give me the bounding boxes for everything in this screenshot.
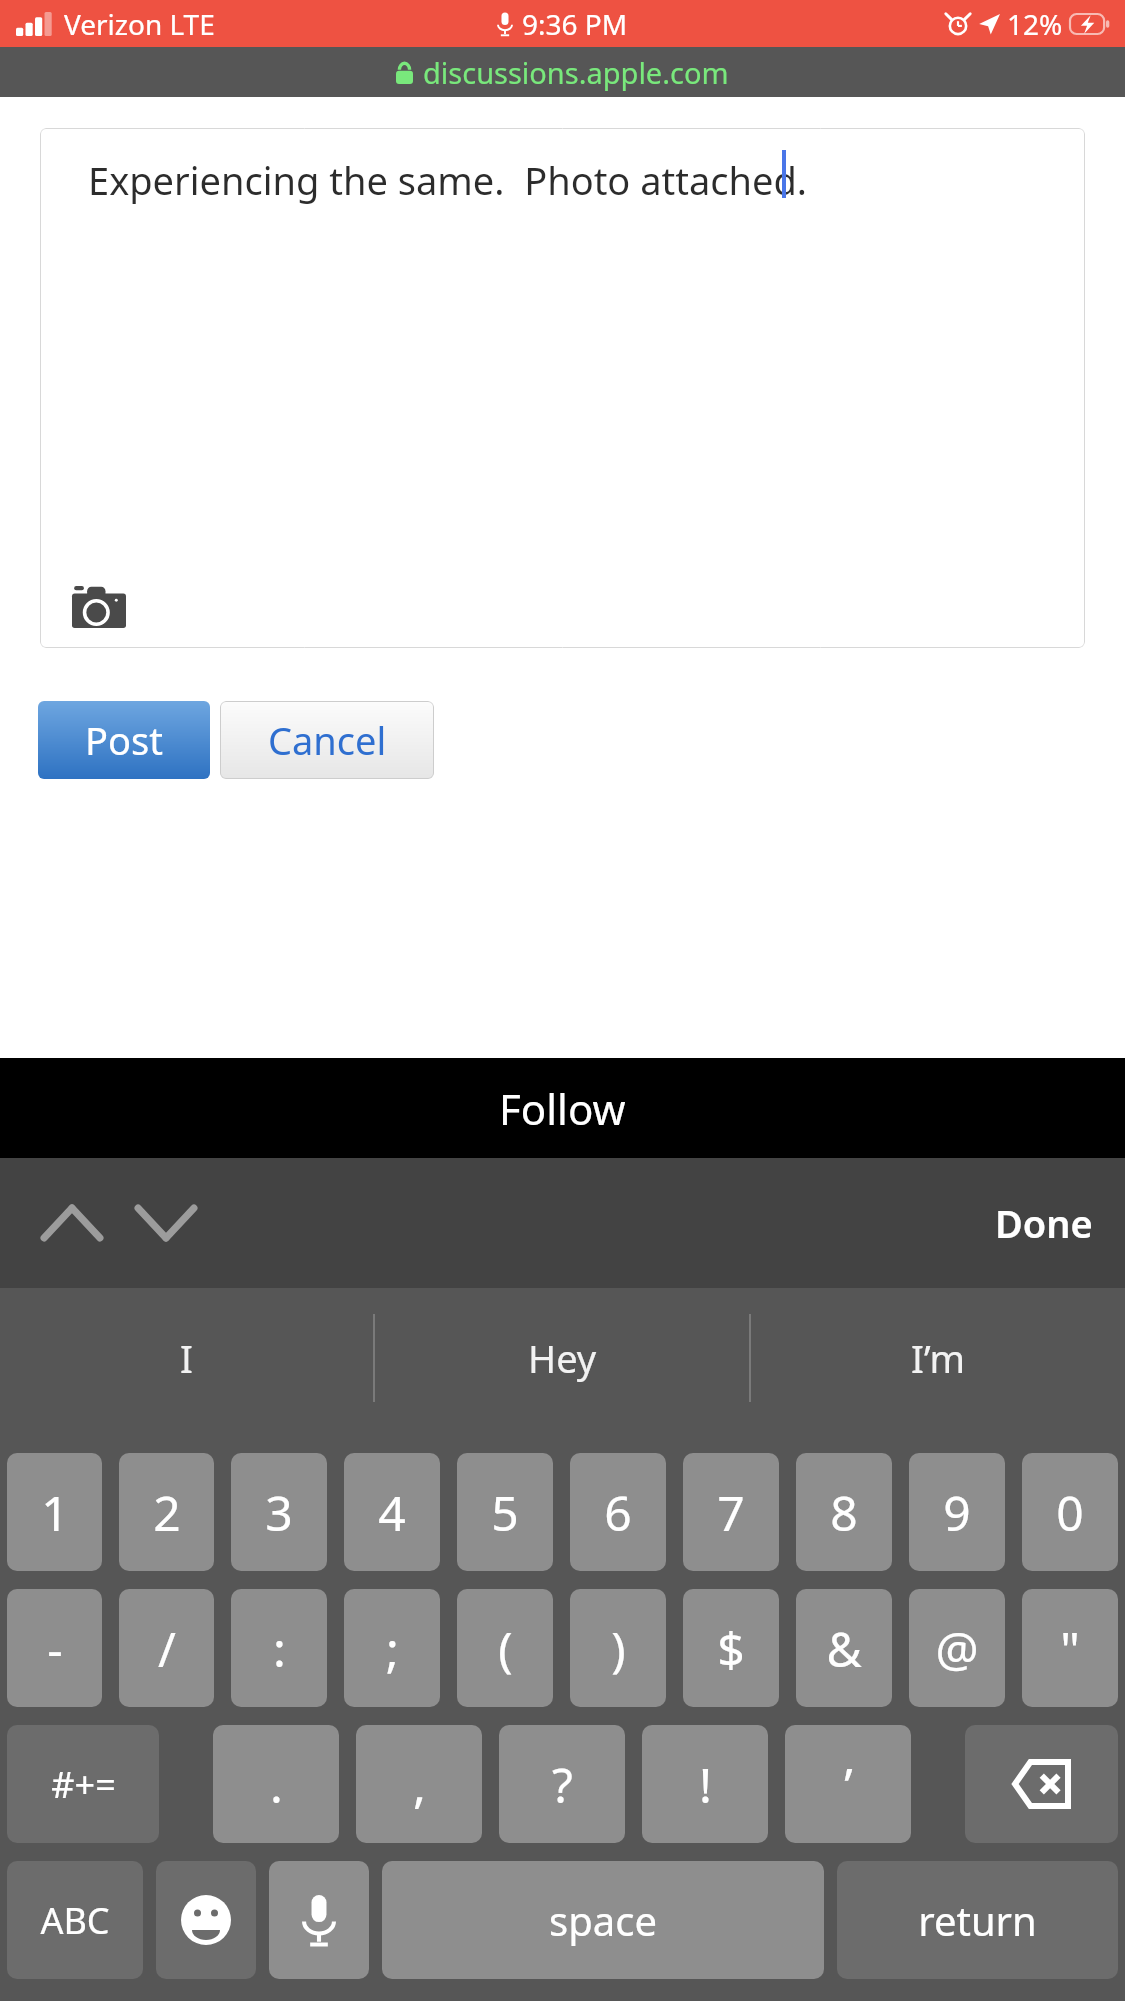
button[interactable]: 0 xyxy=(1022,1453,1118,1571)
staticText: $ xyxy=(717,1616,745,1681)
staticText: discussions.apple.com xyxy=(423,53,729,92)
staticText: 7 xyxy=(717,1480,745,1545)
staticText: Follow xyxy=(499,1080,626,1137)
staticText: 3 xyxy=(265,1480,293,1545)
button[interactable]: ! xyxy=(642,1725,768,1843)
staticText: 9 xyxy=(943,1480,971,1545)
button[interactable]: 6 xyxy=(570,1453,666,1571)
staticText: @ xyxy=(935,1616,979,1681)
button[interactable]: Dictation xyxy=(269,1861,369,1979)
button[interactable]: I xyxy=(0,1288,373,1428)
staticText: 1 xyxy=(41,1480,69,1545)
staticText: Hey xyxy=(528,1332,597,1384)
button[interactable]: Post xyxy=(38,701,210,779)
button[interactable]: Hey xyxy=(375,1288,749,1428)
staticText: Experiencing the same. Photo attached. xyxy=(88,154,807,206)
button[interactable]: , xyxy=(356,1725,482,1843)
button[interactable]: ? xyxy=(499,1725,625,1843)
button[interactable]: 7 xyxy=(683,1453,779,1571)
button[interactable]: Next field xyxy=(122,1179,210,1267)
staticText: ! xyxy=(699,1752,712,1817)
staticText: return xyxy=(918,1893,1037,1947)
staticText: ) xyxy=(611,1616,626,1681)
button[interactable]: #+= xyxy=(7,1725,159,1843)
button[interactable]: @ xyxy=(909,1589,1005,1707)
button[interactable]: Backspace xyxy=(965,1725,1118,1843)
staticText: ( xyxy=(498,1616,513,1681)
button[interactable]: 1 xyxy=(7,1453,102,1571)
button[interactable]: ; xyxy=(344,1589,440,1707)
button[interactable]: / xyxy=(119,1589,214,1707)
button[interactable]: Follow xyxy=(0,1058,1125,1158)
button[interactable]: Emoji xyxy=(156,1861,256,1979)
button[interactable]: return xyxy=(837,1861,1118,1979)
staticText: - xyxy=(47,1616,63,1681)
staticText: 0 xyxy=(1056,1480,1084,1545)
staticText: " xyxy=(1060,1616,1080,1681)
button[interactable]: 5 xyxy=(457,1453,553,1571)
button[interactable]: Address xyxy=(0,47,1125,97)
staticText: , xyxy=(413,1752,426,1817)
button[interactable]: Previous field xyxy=(28,1179,116,1267)
staticText: Cancel xyxy=(268,714,387,766)
button[interactable]: 9 xyxy=(909,1453,1005,1571)
button[interactable]: ( xyxy=(457,1589,553,1707)
staticText: 9:36 PM xyxy=(522,5,628,43)
button[interactable]: & xyxy=(796,1589,892,1707)
staticText: 8 xyxy=(830,1480,858,1545)
staticText: : xyxy=(273,1616,286,1681)
staticText: space xyxy=(549,1893,657,1947)
button[interactable]: " xyxy=(1022,1589,1118,1707)
button[interactable]: space xyxy=(382,1861,824,1979)
button[interactable]: $ xyxy=(683,1589,779,1707)
staticText: 12% xyxy=(1007,5,1063,43)
staticText: Done xyxy=(995,1197,1093,1249)
staticText: #+= xyxy=(51,1760,116,1809)
staticText: 6 xyxy=(604,1480,632,1545)
button[interactable]: ABC xyxy=(7,1861,143,1979)
staticText: ’ xyxy=(844,1752,853,1817)
staticText: ? xyxy=(552,1752,573,1817)
staticText: 5 xyxy=(491,1480,519,1545)
staticText: / xyxy=(158,1616,176,1681)
button[interactable]: : xyxy=(231,1589,327,1707)
staticText: . xyxy=(270,1752,283,1817)
button[interactable]: Attach photo xyxy=(72,586,126,628)
button[interactable]: - xyxy=(7,1589,102,1707)
staticText: I xyxy=(180,1332,193,1384)
button[interactable]: Done xyxy=(985,1185,1103,1261)
staticText: ; xyxy=(386,1616,399,1681)
staticText: 2 xyxy=(153,1480,181,1545)
button[interactable]: ) xyxy=(570,1589,666,1707)
staticText: ABC xyxy=(40,1896,110,1945)
button[interactable]: 3 xyxy=(231,1453,327,1571)
button[interactable]: 2 xyxy=(119,1453,214,1571)
button[interactable]: . xyxy=(213,1725,339,1843)
staticText: Post xyxy=(85,714,163,766)
button[interactable]: Cancel xyxy=(220,701,434,779)
button[interactable]: 8 xyxy=(796,1453,892,1571)
button[interactable]: Experiencing the same. Photo attached. xyxy=(40,128,1085,648)
staticText: I’m xyxy=(911,1332,965,1384)
button[interactable]: 4 xyxy=(344,1453,440,1571)
button[interactable]: ’ xyxy=(785,1725,911,1843)
staticText: & xyxy=(826,1616,862,1681)
button[interactable]: I’m xyxy=(751,1288,1125,1428)
staticText: 4 xyxy=(378,1480,406,1545)
staticText: Verizon LTE xyxy=(64,5,215,43)
